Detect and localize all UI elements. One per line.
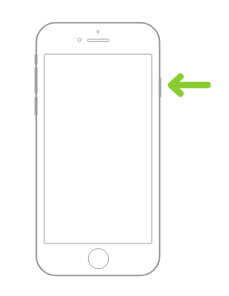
other: Illustration: a green arrow pointing at … bbox=[0, 0, 229, 296]
